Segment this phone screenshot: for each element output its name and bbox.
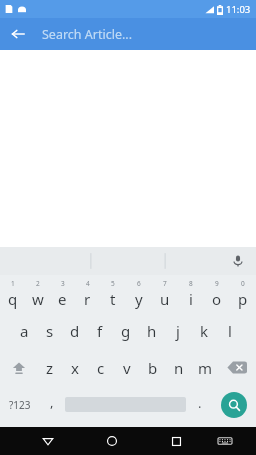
- button[interactable]: a: [12, 312, 37, 349]
- staticText: 8: [189, 279, 193, 288]
- staticText: a: [20, 321, 29, 341]
- button[interactable]: 7: [152, 275, 178, 312]
- staticText: f: [97, 321, 103, 341]
- button[interactable]: Space: [63, 386, 188, 423]
- staticText: m: [198, 358, 213, 378]
- staticText: h: [147, 321, 157, 341]
- button[interactable]: j: [165, 312, 191, 349]
- button[interactable]: z: [37, 349, 62, 386]
- staticText: 4: [86, 279, 90, 288]
- button[interactable]: 9: [204, 275, 230, 312]
- button[interactable]: 2: [25, 275, 50, 312]
- button[interactable]: .: [188, 386, 211, 423]
- staticText: e: [58, 289, 67, 309]
- staticText: k: [200, 321, 209, 341]
- button[interactable]: Backspace: [218, 349, 256, 386]
- staticText: ?123: [9, 398, 31, 412]
- button[interactable]: 5: [100, 275, 126, 312]
- staticText: u: [160, 289, 170, 309]
- button[interactable]: Recents: [154, 427, 198, 455]
- staticText: i: [189, 289, 193, 309]
- button[interactable]: Shift: [0, 349, 37, 386]
- staticText: p: [238, 289, 248, 309]
- button[interactable]: 0: [230, 275, 256, 312]
- button[interactable]: h: [139, 312, 165, 349]
- button[interactable]: m: [192, 349, 218, 386]
- button[interactable]: ?123: [0, 386, 40, 423]
- button[interactable]: Back: [6, 22, 30, 46]
- staticText: 3: [61, 279, 65, 288]
- button[interactable]: 1: [0, 275, 25, 312]
- button[interactable]: 4: [75, 275, 100, 312]
- button[interactable]: Switch keyboard: [203, 427, 247, 455]
- staticText: 5: [111, 279, 115, 288]
- button[interactable]: g: [113, 312, 139, 349]
- button[interactable]: b: [140, 349, 166, 386]
- staticText: 6: [137, 279, 141, 288]
- staticText: t: [110, 289, 116, 309]
- staticText: b: [148, 358, 158, 378]
- button[interactable]: 6: [126, 275, 152, 312]
- button[interactable]: l: [217, 312, 243, 349]
- staticText: r: [84, 289, 91, 309]
- staticText: g: [121, 321, 131, 341]
- button[interactable]: v: [114, 349, 140, 386]
- button[interactable]: c: [88, 349, 114, 386]
- button[interactable]: n: [166, 349, 192, 386]
- staticText: l: [228, 321, 232, 341]
- staticText: v: [123, 358, 131, 378]
- staticText: .: [198, 394, 202, 412]
- button[interactable]: Voice input: [228, 251, 248, 271]
- staticText: 0: [241, 279, 245, 288]
- button[interactable]: x: [62, 349, 88, 386]
- staticText: w: [32, 289, 44, 309]
- staticText: j: [176, 321, 180, 341]
- button[interactable]: ,: [40, 386, 63, 423]
- staticText: z: [46, 358, 54, 378]
- button[interactable]: Search: [221, 392, 247, 418]
- staticText: q: [8, 289, 18, 309]
- button[interactable]: k: [191, 312, 217, 349]
- button[interactable]: 8: [178, 275, 204, 312]
- button[interactable]: d: [62, 312, 87, 349]
- staticText: y: [135, 289, 143, 309]
- staticText: c: [97, 358, 105, 378]
- staticText: 1: [11, 279, 15, 288]
- staticText: d: [70, 321, 80, 341]
- staticText: 11:03: [226, 3, 251, 16]
- staticText: ,: [50, 393, 54, 411]
- staticText: o: [212, 289, 222, 309]
- staticText: 7: [163, 279, 167, 288]
- button[interactable]: Back: [25, 427, 70, 455]
- button[interactable]: s: [37, 312, 62, 349]
- button[interactable]: f: [87, 312, 113, 349]
- button[interactable]: 3: [50, 275, 75, 312]
- staticText: s: [46, 321, 54, 341]
- staticText: 9: [215, 279, 219, 288]
- staticText: 2: [36, 279, 40, 288]
- button[interactable]: Home: [90, 427, 134, 455]
- staticText: Search Article...: [42, 26, 133, 43]
- staticText: x: [71, 358, 79, 378]
- staticText: n: [174, 358, 184, 378]
